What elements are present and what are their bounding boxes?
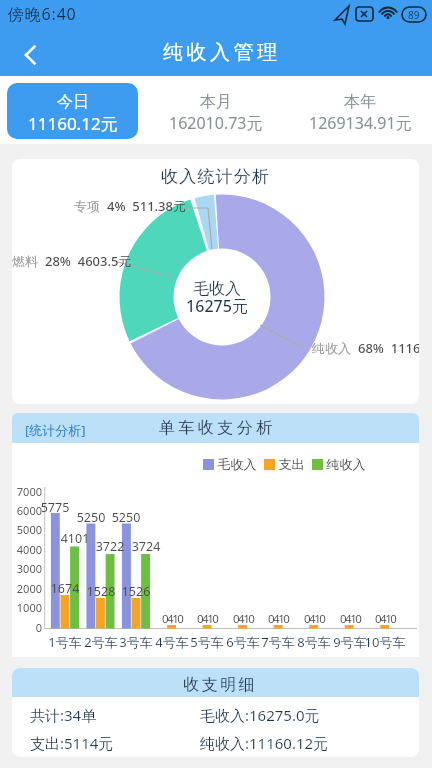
- staticText: 89: [408, 8, 420, 22]
- staticText: 0410: [197, 611, 218, 627]
- staticText: 6000: [12, 503, 42, 518]
- staticText: 毛收入 16275元: [157, 279, 277, 317]
- staticText: 0410: [268, 611, 289, 627]
- staticText: 8号车: [290, 633, 338, 651]
- staticText: 4000: [12, 542, 42, 557]
- staticText: 2000: [12, 581, 42, 596]
- staticText: 9号车: [326, 633, 374, 651]
- staticText: 1526: [120, 583, 152, 600]
- staticText: 5775: [39, 499, 71, 516]
- staticText: 纯收入: [323, 455, 366, 473]
- staticText: 1000: [12, 600, 42, 615]
- staticText: 1674: [49, 580, 81, 597]
- staticText: 纯收入管理: [163, 40, 281, 65]
- staticText: 3722: [94, 538, 126, 555]
- staticText: 7号车: [254, 633, 302, 651]
- staticText: 今日: [57, 92, 89, 112]
- staticText: 7000: [12, 484, 42, 499]
- staticText: 10号车: [361, 633, 409, 651]
- staticText: 收入统计分析: [161, 166, 271, 187]
- staticText: 11160.12元: [28, 112, 118, 135]
- staticText: 2号车: [77, 633, 125, 651]
- staticText: 5250: [110, 509, 142, 526]
- staticText: 162010.73元: [169, 112, 263, 134]
- staticText: 支出: [275, 455, 312, 473]
- staticText: 4% 511.38元: [107, 197, 186, 215]
- staticText: 专项: [74, 197, 107, 215]
- staticText: 本月: [200, 92, 232, 112]
- staticText: 5号车: [183, 633, 231, 651]
- staticText: 4号车: [148, 633, 196, 651]
- staticText: 0410: [375, 611, 396, 627]
- staticText: 28% 4603.5元: [45, 252, 132, 270]
- staticText: 支出:5114元: [30, 733, 114, 753]
- staticText: 1号车: [41, 633, 89, 651]
- staticText: 0410: [162, 611, 183, 627]
- staticText: 4101: [59, 530, 91, 547]
- staticText: 收支明细: [182, 675, 256, 695]
- staticText: 3724: [130, 538, 162, 555]
- staticText: 3号车: [112, 633, 160, 651]
- staticText: 毛收入:16275.0元: [200, 705, 320, 725]
- staticText: 5000: [12, 522, 42, 537]
- staticText: 3000: [12, 561, 42, 576]
- staticText: 0410: [304, 611, 325, 627]
- staticText: [统计分析]: [25, 421, 86, 439]
- staticText: 5250: [75, 509, 107, 526]
- staticText: 0: [12, 620, 42, 635]
- staticText: 0410: [340, 611, 361, 627]
- staticText: 68% 11160.: [358, 339, 419, 357]
- staticText: 1269134.91元: [309, 112, 412, 134]
- staticText: 单车收支分析: [157, 418, 274, 438]
- staticText: 0410: [233, 611, 254, 627]
- staticText: 本年: [344, 92, 376, 112]
- staticText: 6号车: [219, 633, 267, 651]
- staticText: 纯收入: [312, 339, 358, 357]
- staticText: 1528: [85, 583, 117, 600]
- staticText: 纯收入:11160.12元: [200, 733, 329, 753]
- staticText: 共计:34单: [30, 705, 97, 725]
- staticText: 毛收入: [214, 455, 264, 473]
- staticText: 傍晚6:40: [8, 3, 77, 25]
- staticText: 燃料: [12, 252, 45, 270]
